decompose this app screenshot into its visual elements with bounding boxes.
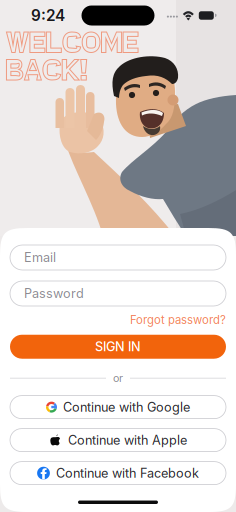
button[interactable]: Forgot password?	[130, 313, 226, 327]
staticText: Continue with Facebook	[56, 465, 199, 481]
button[interactable]: Email	[10, 245, 226, 270]
button[interactable]: SIGN IN	[10, 335, 226, 359]
staticText: 9:24	[31, 6, 65, 25]
staticText: Email	[24, 250, 56, 265]
button[interactable]: Password	[10, 281, 226, 306]
button[interactable]: Continue with Apple	[10, 429, 226, 452]
button[interactable]: Continue with Google	[10, 396, 226, 419]
staticText: Forgot password?	[130, 313, 226, 327]
staticText: SIGN IN	[95, 339, 141, 354]
staticText: or	[113, 372, 123, 385]
staticText: Continue with Apple	[68, 432, 187, 448]
button[interactable]: Continue with Facebook	[10, 462, 226, 485]
staticText: Password	[24, 286, 84, 301]
staticText: Continue with Google	[63, 399, 190, 415]
